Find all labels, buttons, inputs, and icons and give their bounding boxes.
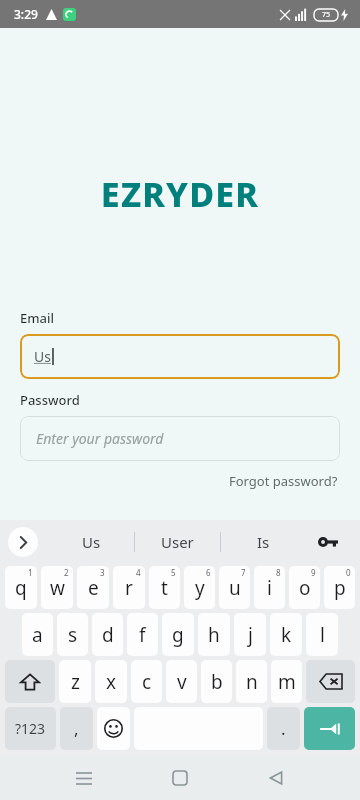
staticText: 8 bbox=[276, 567, 281, 578]
button[interactable]: n bbox=[236, 660, 267, 703]
staticText: s bbox=[68, 622, 78, 648]
button[interactable]: i bbox=[254, 566, 285, 609]
button[interactable]: Us bbox=[20, 334, 340, 379]
button[interactable]: q bbox=[5, 566, 37, 609]
staticText: m bbox=[278, 669, 296, 695]
button[interactable]: d bbox=[92, 613, 123, 656]
button[interactable]: l bbox=[306, 613, 338, 656]
button[interactable]: c bbox=[131, 660, 162, 703]
staticText: w bbox=[50, 575, 65, 601]
staticText: q bbox=[15, 575, 27, 601]
staticText: d bbox=[102, 622, 114, 648]
staticText: 2 bbox=[64, 567, 69, 578]
staticText: Password bbox=[20, 391, 80, 409]
staticText: EZRYDER bbox=[0, 171, 360, 217]
staticText: l bbox=[320, 622, 325, 648]
button[interactable]: Back bbox=[254, 756, 298, 800]
button[interactable]: Us bbox=[48, 520, 134, 564]
staticText: Us bbox=[34, 347, 51, 366]
staticText: j bbox=[248, 622, 253, 648]
button[interactable]: r bbox=[113, 566, 145, 609]
button[interactable]: Forgot password? bbox=[227, 470, 340, 492]
button[interactable]: o bbox=[289, 566, 320, 609]
staticText: Forgot password? bbox=[229, 472, 338, 490]
staticText: g bbox=[172, 622, 184, 648]
button[interactable]: h bbox=[198, 613, 230, 656]
staticText: 3 bbox=[100, 567, 105, 578]
staticText: p bbox=[334, 575, 346, 601]
button[interactable]: Emoji bbox=[97, 707, 130, 750]
staticText: 75 bbox=[322, 10, 331, 20]
staticText: f bbox=[139, 622, 146, 648]
staticText: Is bbox=[257, 532, 270, 552]
button[interactable]: Enter bbox=[304, 707, 355, 750]
button[interactable]: s bbox=[57, 613, 88, 656]
staticText: b bbox=[211, 669, 223, 695]
button[interactable]: a bbox=[22, 613, 53, 656]
button[interactable]: j bbox=[234, 613, 266, 656]
staticText: r bbox=[125, 575, 133, 601]
staticText: ?123 bbox=[15, 719, 46, 738]
staticText: 5 bbox=[171, 567, 176, 578]
button[interactable]: e bbox=[77, 566, 109, 609]
button[interactable]: Shift bbox=[5, 660, 55, 703]
staticText: 7 bbox=[241, 567, 246, 578]
button[interactable]: p bbox=[324, 566, 355, 609]
button[interactable]: g bbox=[162, 613, 194, 656]
staticText: , bbox=[74, 717, 79, 740]
staticText: n bbox=[246, 669, 258, 695]
staticText: . bbox=[281, 717, 286, 740]
staticText: 3:29 bbox=[14, 6, 38, 22]
button[interactable]: Backspace bbox=[306, 660, 355, 703]
staticText: u bbox=[229, 575, 241, 601]
staticText: 6 bbox=[206, 567, 211, 578]
button[interactable]: ?123 bbox=[5, 707, 56, 750]
staticText: Email bbox=[20, 309, 55, 327]
button[interactable]: , bbox=[60, 707, 93, 750]
button[interactable]: . bbox=[267, 707, 300, 750]
button[interactable]: k bbox=[270, 613, 302, 656]
button[interactable]: Password key bbox=[306, 520, 350, 564]
button[interactable]: v bbox=[166, 660, 197, 703]
staticText: o bbox=[299, 575, 311, 601]
staticText: 1 bbox=[28, 567, 33, 578]
button[interactable]: User bbox=[135, 520, 220, 564]
button[interactable]: Is bbox=[221, 520, 306, 564]
staticText: User bbox=[161, 532, 194, 552]
staticText: t bbox=[161, 575, 168, 601]
button[interactable]: w bbox=[41, 566, 73, 609]
button[interactable]: z bbox=[59, 660, 91, 703]
button[interactable]: t bbox=[149, 566, 180, 609]
staticText: Us bbox=[82, 532, 101, 552]
staticText: e bbox=[88, 575, 99, 601]
button[interactable]: y bbox=[184, 566, 215, 609]
button[interactable]: Menu bbox=[62, 756, 106, 800]
button[interactable]: f bbox=[127, 613, 158, 656]
staticText: 4 bbox=[136, 567, 141, 578]
button[interactable]: Expand suggestions bbox=[8, 527, 38, 557]
button[interactable]: x bbox=[95, 660, 127, 703]
button[interactable]: Home bbox=[158, 756, 202, 800]
staticText: c bbox=[142, 669, 152, 695]
button[interactable]: u bbox=[219, 566, 250, 609]
staticText: i bbox=[267, 575, 272, 601]
staticText: 9 bbox=[311, 567, 316, 578]
staticText: y bbox=[195, 575, 205, 601]
staticText: k bbox=[281, 622, 292, 648]
button[interactable]: b bbox=[201, 660, 232, 703]
staticText: h bbox=[208, 622, 220, 648]
button[interactable]: m bbox=[271, 660, 302, 703]
staticText: a bbox=[32, 622, 43, 648]
staticText: Enter your password bbox=[36, 429, 164, 448]
staticText: v bbox=[177, 669, 187, 695]
staticText: 0 bbox=[346, 567, 351, 578]
button[interactable]: Enter your password bbox=[20, 416, 340, 461]
staticText: x bbox=[106, 669, 117, 695]
staticText: z bbox=[71, 669, 80, 695]
